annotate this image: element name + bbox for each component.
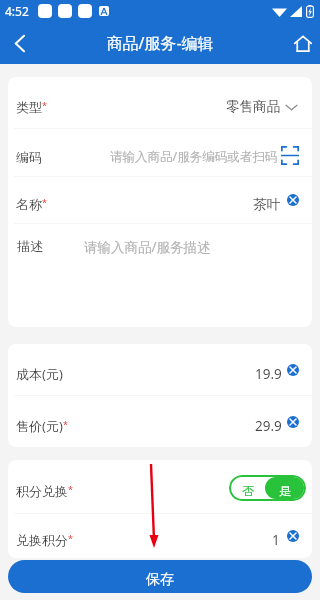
staticText: * xyxy=(68,483,73,495)
staticText: 编码 xyxy=(16,149,42,165)
staticText: 保存 xyxy=(146,571,174,589)
staticText: 类型 xyxy=(16,99,42,115)
staticText: 4:52 xyxy=(5,3,29,19)
button[interactable]: 名称 xyxy=(8,177,312,223)
staticText: 请输入商品/服务编码或者扫码 xyxy=(110,148,278,165)
button[interactable]: 类型 xyxy=(8,77,312,128)
button[interactable]: 清除 xyxy=(287,364,299,376)
button[interactable]: 清除 xyxy=(287,530,299,542)
button[interactable]: 编码 xyxy=(8,129,312,176)
button[interactable]: 否 xyxy=(229,475,267,501)
button[interactable]: 清除 xyxy=(287,194,299,206)
button[interactable]: 扫码 xyxy=(280,145,299,165)
staticText: 19.9 xyxy=(255,365,282,383)
staticText: * xyxy=(42,99,47,111)
staticText: 是 xyxy=(279,483,291,498)
staticText: 29.9 xyxy=(255,417,282,435)
staticText: 否 xyxy=(242,483,254,498)
staticText: * xyxy=(63,418,68,430)
button[interactable]: 返回 xyxy=(0,22,38,64)
staticText: 茶叶 xyxy=(253,196,280,213)
staticText: 成本(元) xyxy=(16,365,63,383)
button[interactable]: 是 xyxy=(265,477,304,499)
button[interactable]: 首页 xyxy=(285,26,320,61)
button[interactable]: 兑换积分 xyxy=(8,514,312,558)
button[interactable]: 保存 xyxy=(8,560,312,593)
staticText: * xyxy=(42,196,47,208)
staticText: 积分兑换 xyxy=(16,483,68,499)
button[interactable]: 描述 xyxy=(8,224,312,327)
button[interactable]: 积分兑换 xyxy=(8,460,312,513)
staticText: 请输入商品/服务描述 xyxy=(84,238,211,256)
staticText: * xyxy=(68,532,73,544)
button[interactable]: 成本(元) xyxy=(8,344,312,395)
staticText: 1 xyxy=(272,531,280,549)
button[interactable]: 清除 xyxy=(287,416,299,428)
button[interactable]: 售价(元) xyxy=(8,396,312,447)
staticText: 售价(元) xyxy=(16,417,63,435)
staticText: 描述 xyxy=(17,238,43,254)
staticText: 商品/服务-编辑 xyxy=(106,32,214,54)
staticText: 名称 xyxy=(16,196,42,212)
staticText: 零售商品 xyxy=(226,98,280,115)
staticText: 兑换积分 xyxy=(16,532,68,548)
